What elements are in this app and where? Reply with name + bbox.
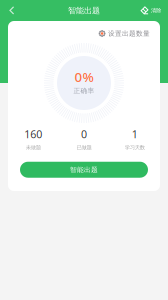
staticText: 0 [81, 127, 87, 141]
button[interactable]: 设置出题数量 [97, 28, 152, 39]
staticText: 智能出题 [68, 6, 100, 15]
staticText: 设置出题数量 [108, 29, 150, 38]
staticText: 智能出题 [70, 166, 98, 174]
staticText: 160 [24, 127, 42, 141]
button[interactable]: 清除 [137, 2, 164, 19]
button[interactable]: 智能出题 [20, 162, 148, 178]
staticText: 学习天数 [125, 144, 145, 151]
staticText: 1 [132, 127, 138, 141]
staticText: 正确率 [73, 87, 94, 95]
staticText: 0% [74, 68, 93, 86]
staticText: 未做题 [26, 144, 41, 151]
staticText: 已做题 [76, 144, 91, 151]
button[interactable]: 返回 [4, 2, 20, 19]
staticText: 清除 [151, 7, 161, 14]
